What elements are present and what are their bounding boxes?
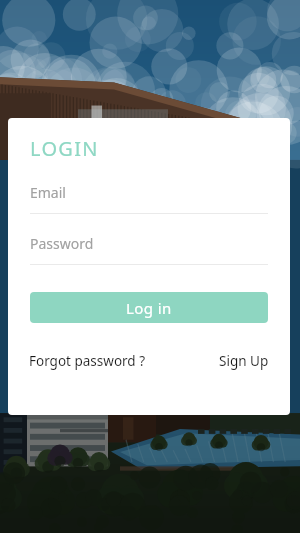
button[interactable]: Password bbox=[30, 234, 268, 265]
staticText: Sign Up bbox=[219, 352, 269, 370]
staticText: LOGIN bbox=[30, 135, 99, 162]
staticText: Log in bbox=[126, 298, 172, 318]
staticText: Email bbox=[30, 183, 66, 202]
staticText: Forgot password ? bbox=[29, 352, 146, 370]
button[interactable]: Sign Up bbox=[219, 347, 269, 375]
staticText: Password bbox=[30, 234, 94, 253]
button[interactable]: Log in bbox=[30, 292, 268, 323]
button[interactable]: Forgot password ? bbox=[29, 347, 146, 375]
button[interactable]: Email bbox=[30, 183, 268, 214]
